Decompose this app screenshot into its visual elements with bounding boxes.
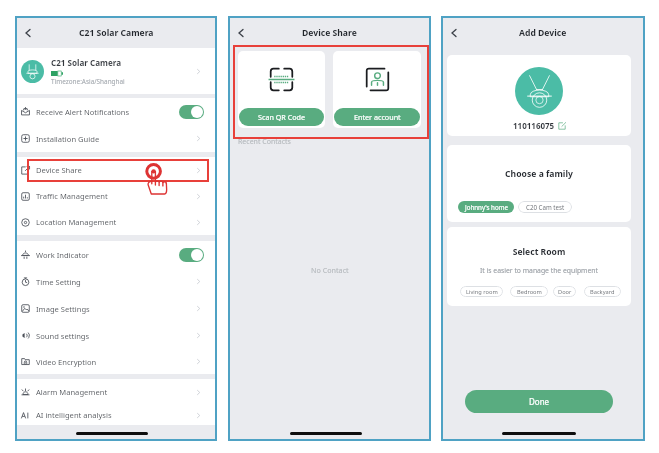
staticText: Living room (466, 288, 498, 296)
staticText: Choose a family (447, 168, 631, 180)
staticText: Alarm Management (36, 387, 195, 397)
staticText: Image Settings (36, 304, 195, 314)
button[interactable]: Installation Guide (17, 125, 215, 152)
staticText: AI intelligent analysis (36, 410, 195, 420)
staticText: Done (529, 396, 550, 407)
button[interactable]: Johnny's home (458, 201, 514, 213)
button[interactable]: Back (446, 25, 462, 41)
staticText: Location Management (36, 217, 195, 227)
staticText: Device Share (36, 165, 195, 175)
button[interactable]: Image Settings (17, 295, 215, 322)
button[interactable] (179, 248, 204, 262)
staticText: Scan QR Code (258, 112, 306, 122)
staticText: Video Encryption (36, 357, 195, 367)
staticText: 110116075 (513, 120, 555, 131)
staticText: C21 Solar Camera (51, 57, 122, 68)
staticText: C21 Solar Camera (79, 27, 154, 39)
staticText: Traffic Management (36, 191, 195, 201)
button[interactable]: Edit name (558, 122, 566, 130)
staticText: Installation Guide (36, 134, 195, 144)
button[interactable]: Sound settings (17, 322, 215, 349)
button[interactable]: Enter account (333, 51, 421, 128)
staticText: Select Room (447, 246, 631, 258)
button[interactable]: Time Setting (17, 268, 215, 295)
button[interactable] (179, 105, 204, 119)
staticText: Sound settings (36, 331, 195, 341)
button[interactable]: Receive Alert Notifications (17, 98, 215, 125)
button[interactable]: Location Management (17, 209, 215, 235)
staticText: Enter account (354, 112, 401, 122)
button[interactable]: Work Indicator (17, 241, 215, 268)
staticText: Receive Alert Notifications (36, 107, 179, 117)
staticText: Backyard (590, 288, 615, 296)
staticText: Recent Contacts (238, 137, 291, 147)
staticText: C20 Cam test (526, 203, 565, 211)
staticText: Add Device (519, 27, 567, 39)
staticText: Door (558, 288, 572, 296)
staticText: Time Setting (36, 277, 195, 287)
staticText: Bedroom (517, 288, 542, 296)
staticText: It is easier to manage the equipment (447, 266, 631, 275)
button[interactable]: Backyard (584, 286, 621, 297)
staticText: Timezone:Asia/Shanghai (51, 77, 125, 86)
button[interactable]: Video Encryption (17, 349, 215, 374)
staticText: Device Share (302, 27, 357, 39)
staticText: No Contact (311, 265, 349, 275)
button[interactable]: Alarm Management (17, 379, 215, 405)
button[interactable]: Living room (460, 286, 503, 297)
button[interactable]: C21 Solar Camera (17, 48, 215, 94)
button[interactable]: Back (233, 25, 249, 41)
button[interactable]: Door (553, 286, 576, 297)
staticText: Work Indicator (36, 250, 179, 260)
button[interactable]: Device Share (17, 157, 215, 183)
button[interactable]: AI intelligent analysis (17, 405, 215, 425)
button[interactable]: Traffic Management (17, 183, 215, 209)
button[interactable]: Done (465, 390, 613, 413)
button[interactable]: Bedroom (510, 286, 548, 297)
staticText: Johnny's home (465, 203, 508, 211)
button[interactable]: Back (20, 25, 36, 41)
button[interactable]: C20 Cam test (518, 201, 572, 213)
button[interactable]: Scan QR Code (238, 51, 325, 128)
